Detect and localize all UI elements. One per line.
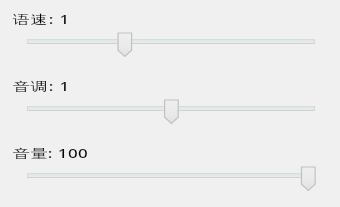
button[interactable]: 音量 slider, value 100 bbox=[23, 167, 319, 190]
staticText: 语速: 1 bbox=[13, 11, 71, 28]
staticText: 音量: 100 bbox=[13, 145, 89, 162]
button[interactable]: 音调 slider, value 1 bbox=[23, 100, 319, 123]
staticText: 音调: 1 bbox=[13, 78, 71, 95]
button[interactable]: 语速 slider, value 1 bbox=[23, 33, 319, 56]
